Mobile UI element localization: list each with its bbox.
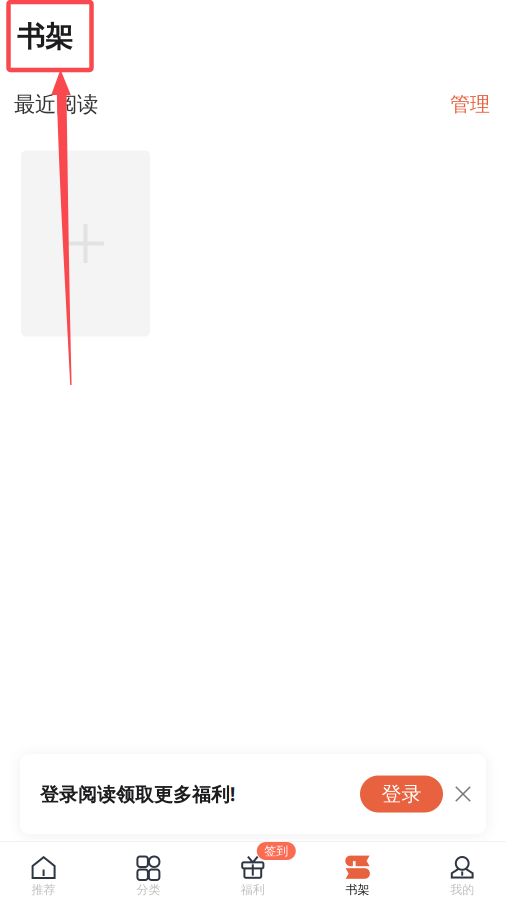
- staticText: 分类: [136, 882, 160, 897]
- button[interactable]: 分类: [122, 842, 174, 901]
- button[interactable]: 我的: [436, 842, 488, 901]
- button[interactable]: 添加书籍: [21, 151, 150, 337]
- button[interactable]: 管理: [436, 85, 490, 124]
- button[interactable]: 推荐: [18, 842, 70, 901]
- staticText: 登录: [381, 782, 421, 806]
- staticText: 我的: [450, 882, 474, 897]
- button[interactable]: 关闭: [443, 774, 483, 814]
- staticText: 福利: [241, 882, 265, 897]
- button[interactable]: 书架: [332, 842, 384, 901]
- staticText: 管理: [450, 92, 490, 117]
- staticText: 书架: [346, 882, 370, 897]
- button[interactable]: 福利: [227, 842, 279, 901]
- staticText: 签到: [264, 844, 288, 858]
- staticText: 最近阅读: [14, 91, 98, 117]
- staticText: 登录阅读领取更多福利!: [40, 782, 235, 806]
- staticText: 推荐: [32, 882, 56, 897]
- staticText: 书架: [17, 20, 73, 54]
- button[interactable]: 登录: [360, 775, 443, 812]
